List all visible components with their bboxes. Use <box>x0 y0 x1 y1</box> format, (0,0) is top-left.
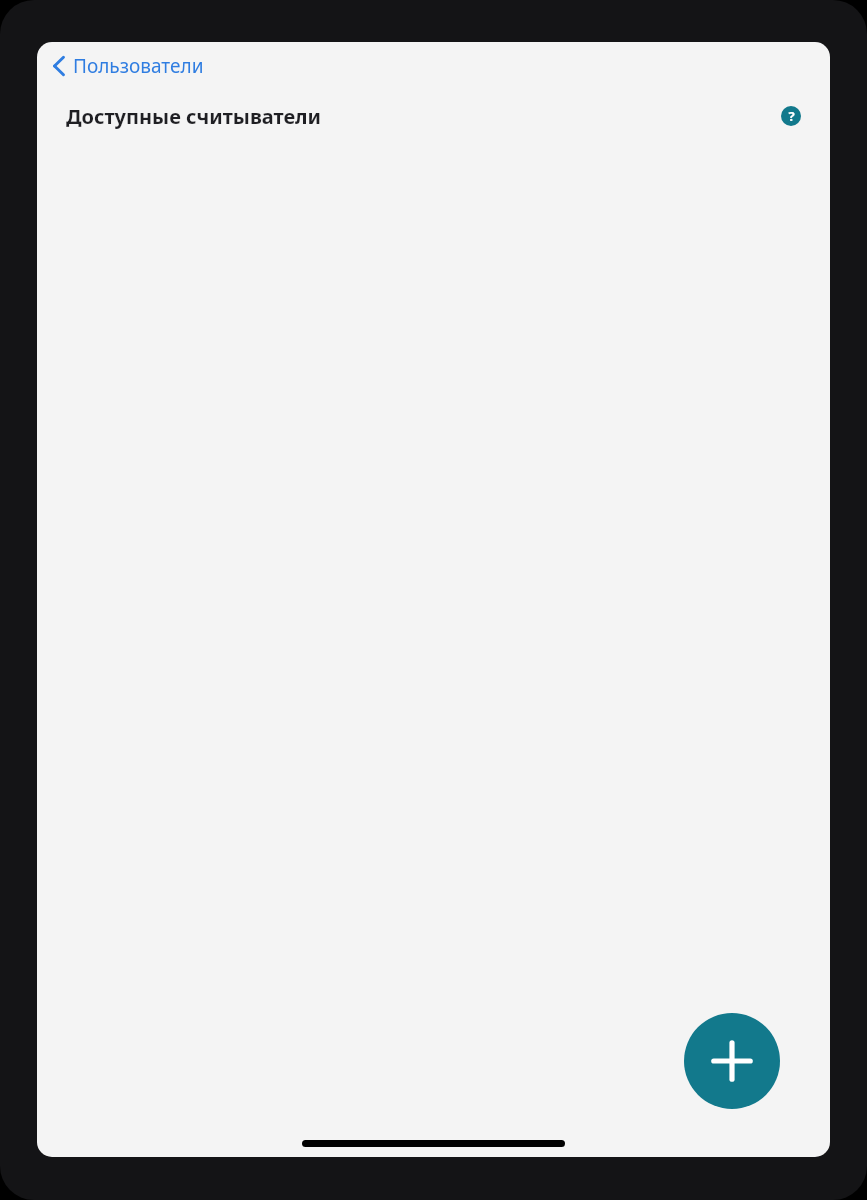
button[interactable]: Добавить <box>684 1013 780 1109</box>
staticText: ? <box>788 107 795 125</box>
button[interactable]: Справка <box>776 101 806 131</box>
staticText: Доступные считыватели <box>66 103 322 130</box>
staticText: Пользователи <box>73 53 204 79</box>
button[interactable]: Пользователи <box>47 48 216 84</box>
